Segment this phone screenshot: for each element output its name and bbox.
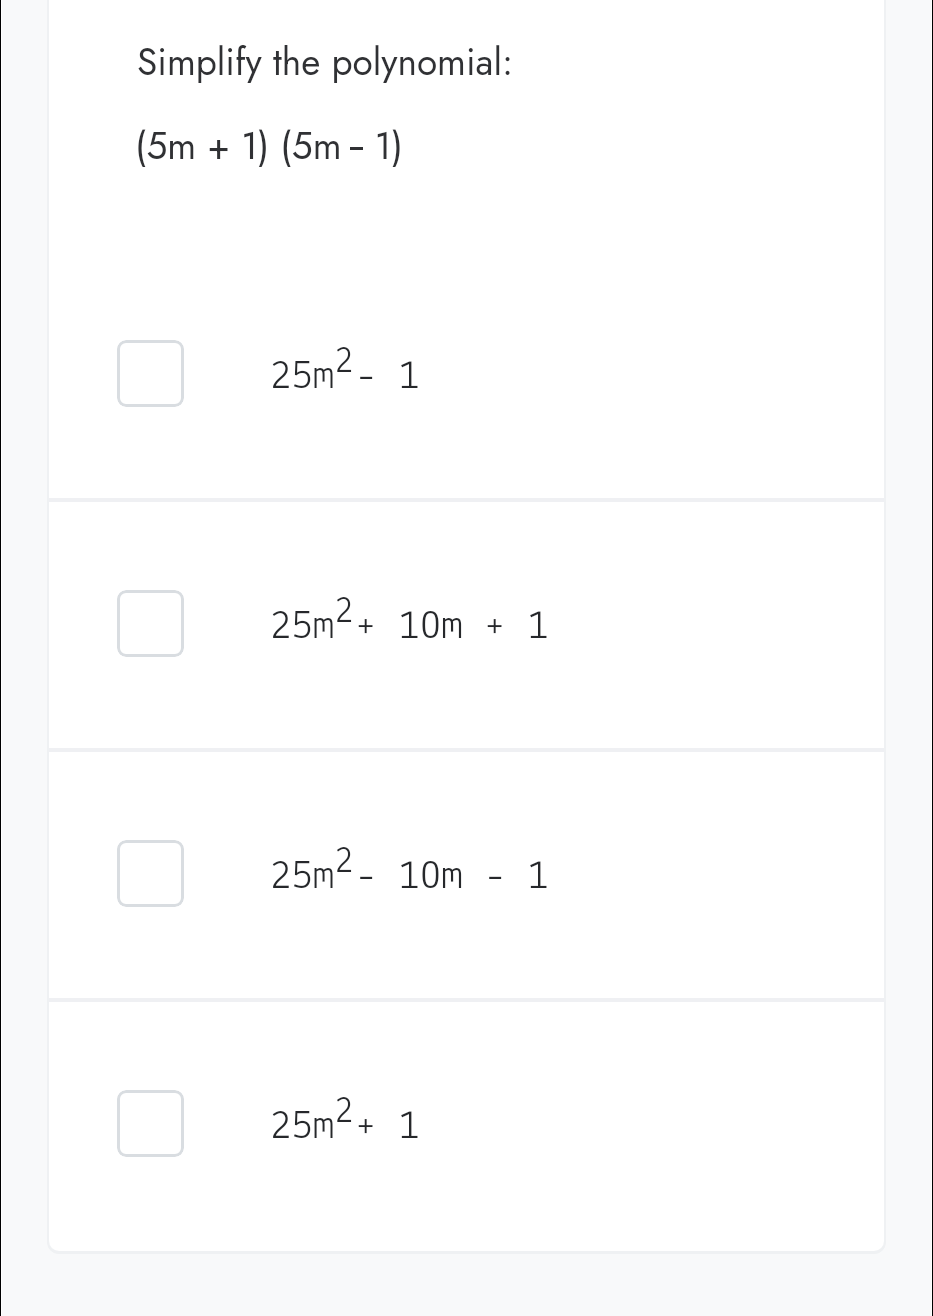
other: Select 25m squared minus 1 (117, 340, 184, 407)
staticText: (5m + 1) (5m 1) (135, 119, 403, 172)
staticText: 25m2- 1 (270, 344, 421, 398)
staticText: 25m2+ 10m + 1 (270, 594, 550, 648)
staticText: Simplify the polynomial: (137, 35, 513, 88)
other: Select 25m squared plus 1 (117, 1090, 184, 1157)
other: Select 25m squared minus 10m minus 1 (117, 840, 184, 907)
button[interactable]: 25m squared plus 1 (49, 998, 884, 1248)
button[interactable]: 25m squared minus 10m minus 1 (49, 748, 884, 998)
staticText: 25m2+ 1 (270, 1094, 421, 1148)
button[interactable]: 25m squared plus 10m plus 1 (49, 498, 884, 748)
other: Select 25m squared plus 10m plus 1 (117, 590, 184, 657)
staticText: 25m2- 10m - 1 (270, 844, 550, 898)
button[interactable]: 25m squared minus 1 (49, 248, 884, 498)
